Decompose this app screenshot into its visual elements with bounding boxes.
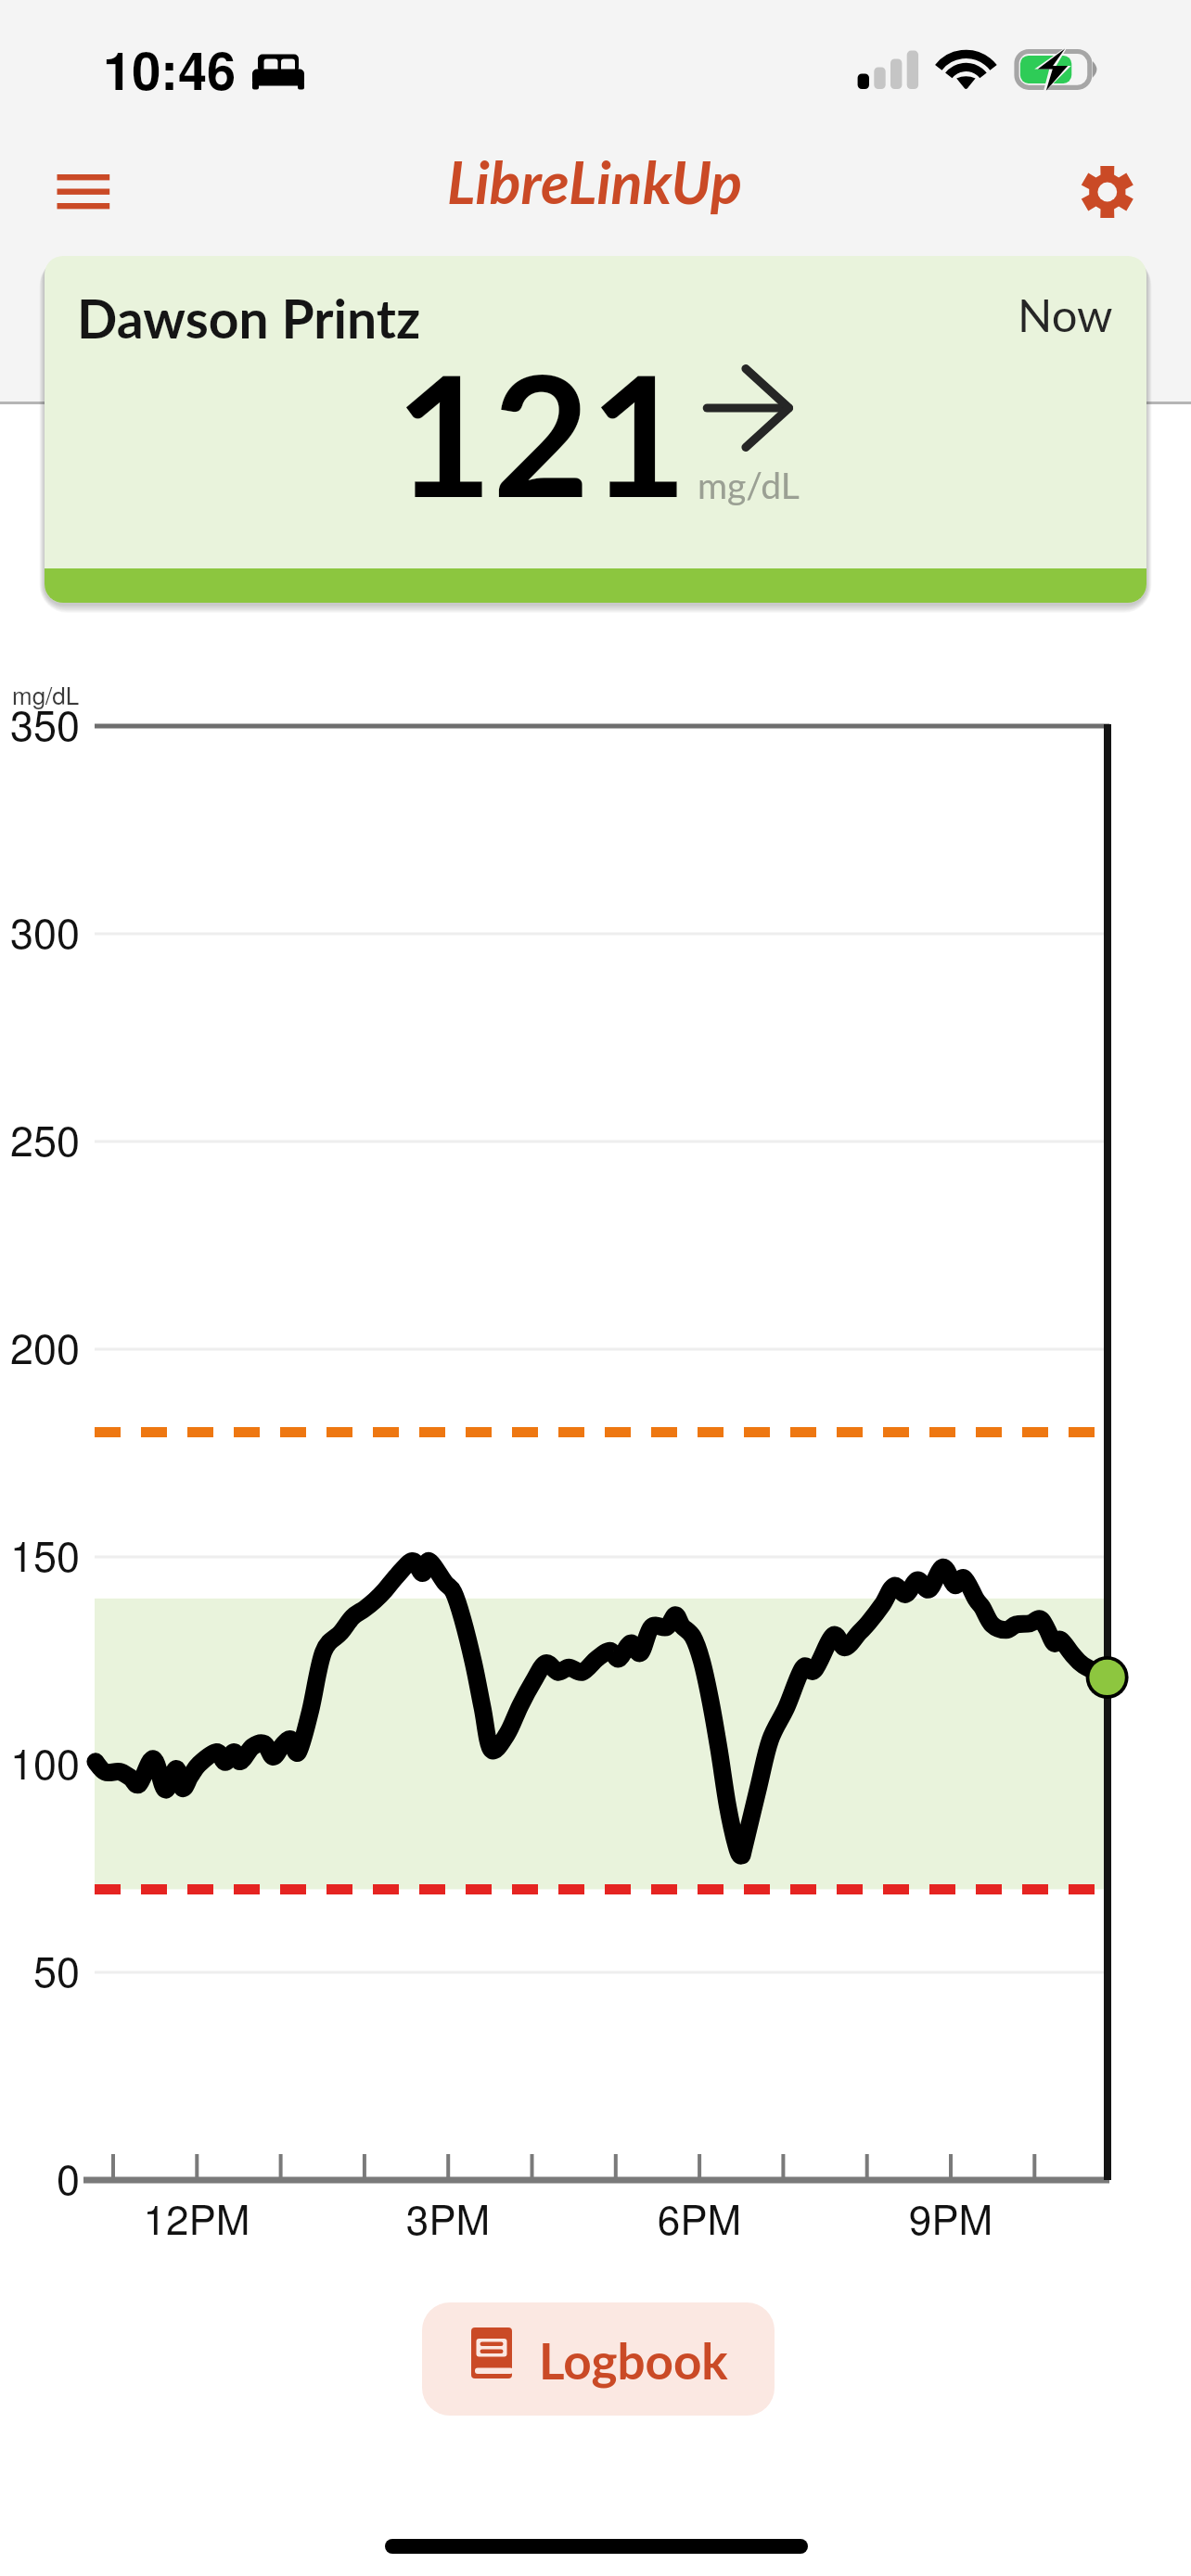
- staticText: 250: [0, 1108, 80, 1167]
- staticText: 121: [395, 331, 687, 532]
- staticText: 50: [0, 1939, 80, 1998]
- staticText: 10:46: [103, 32, 237, 106]
- staticText: 200: [0, 1316, 80, 1375]
- staticText: 350: [0, 693, 80, 752]
- staticText: 9PM: [812, 2187, 1090, 2246]
- button[interactable]: Dawson Printz: [45, 256, 1146, 603]
- staticText: Dawson Printz: [77, 287, 421, 350]
- staticText: 0: [0, 2147, 80, 2206]
- staticText: LibreLinkUp: [447, 147, 743, 217]
- staticText: Now: [1018, 287, 1113, 342]
- staticText: 3PM: [309, 2187, 587, 2246]
- button[interactable]: Logbook: [422, 2302, 775, 2416]
- staticText: 100: [0, 1731, 80, 1791]
- staticText: Logbook: [539, 2331, 728, 2391]
- staticText: mg/dL: [12, 677, 80, 711]
- staticText: 6PM: [560, 2187, 839, 2246]
- staticText: 300: [0, 900, 80, 960]
- staticText: 150: [0, 1524, 80, 1583]
- staticText: mg/dL: [698, 464, 800, 507]
- button[interactable]: Settings: [1074, 159, 1141, 224]
- staticText: 12PM: [58, 2187, 336, 2246]
- button[interactable]: Menu: [43, 163, 124, 221]
